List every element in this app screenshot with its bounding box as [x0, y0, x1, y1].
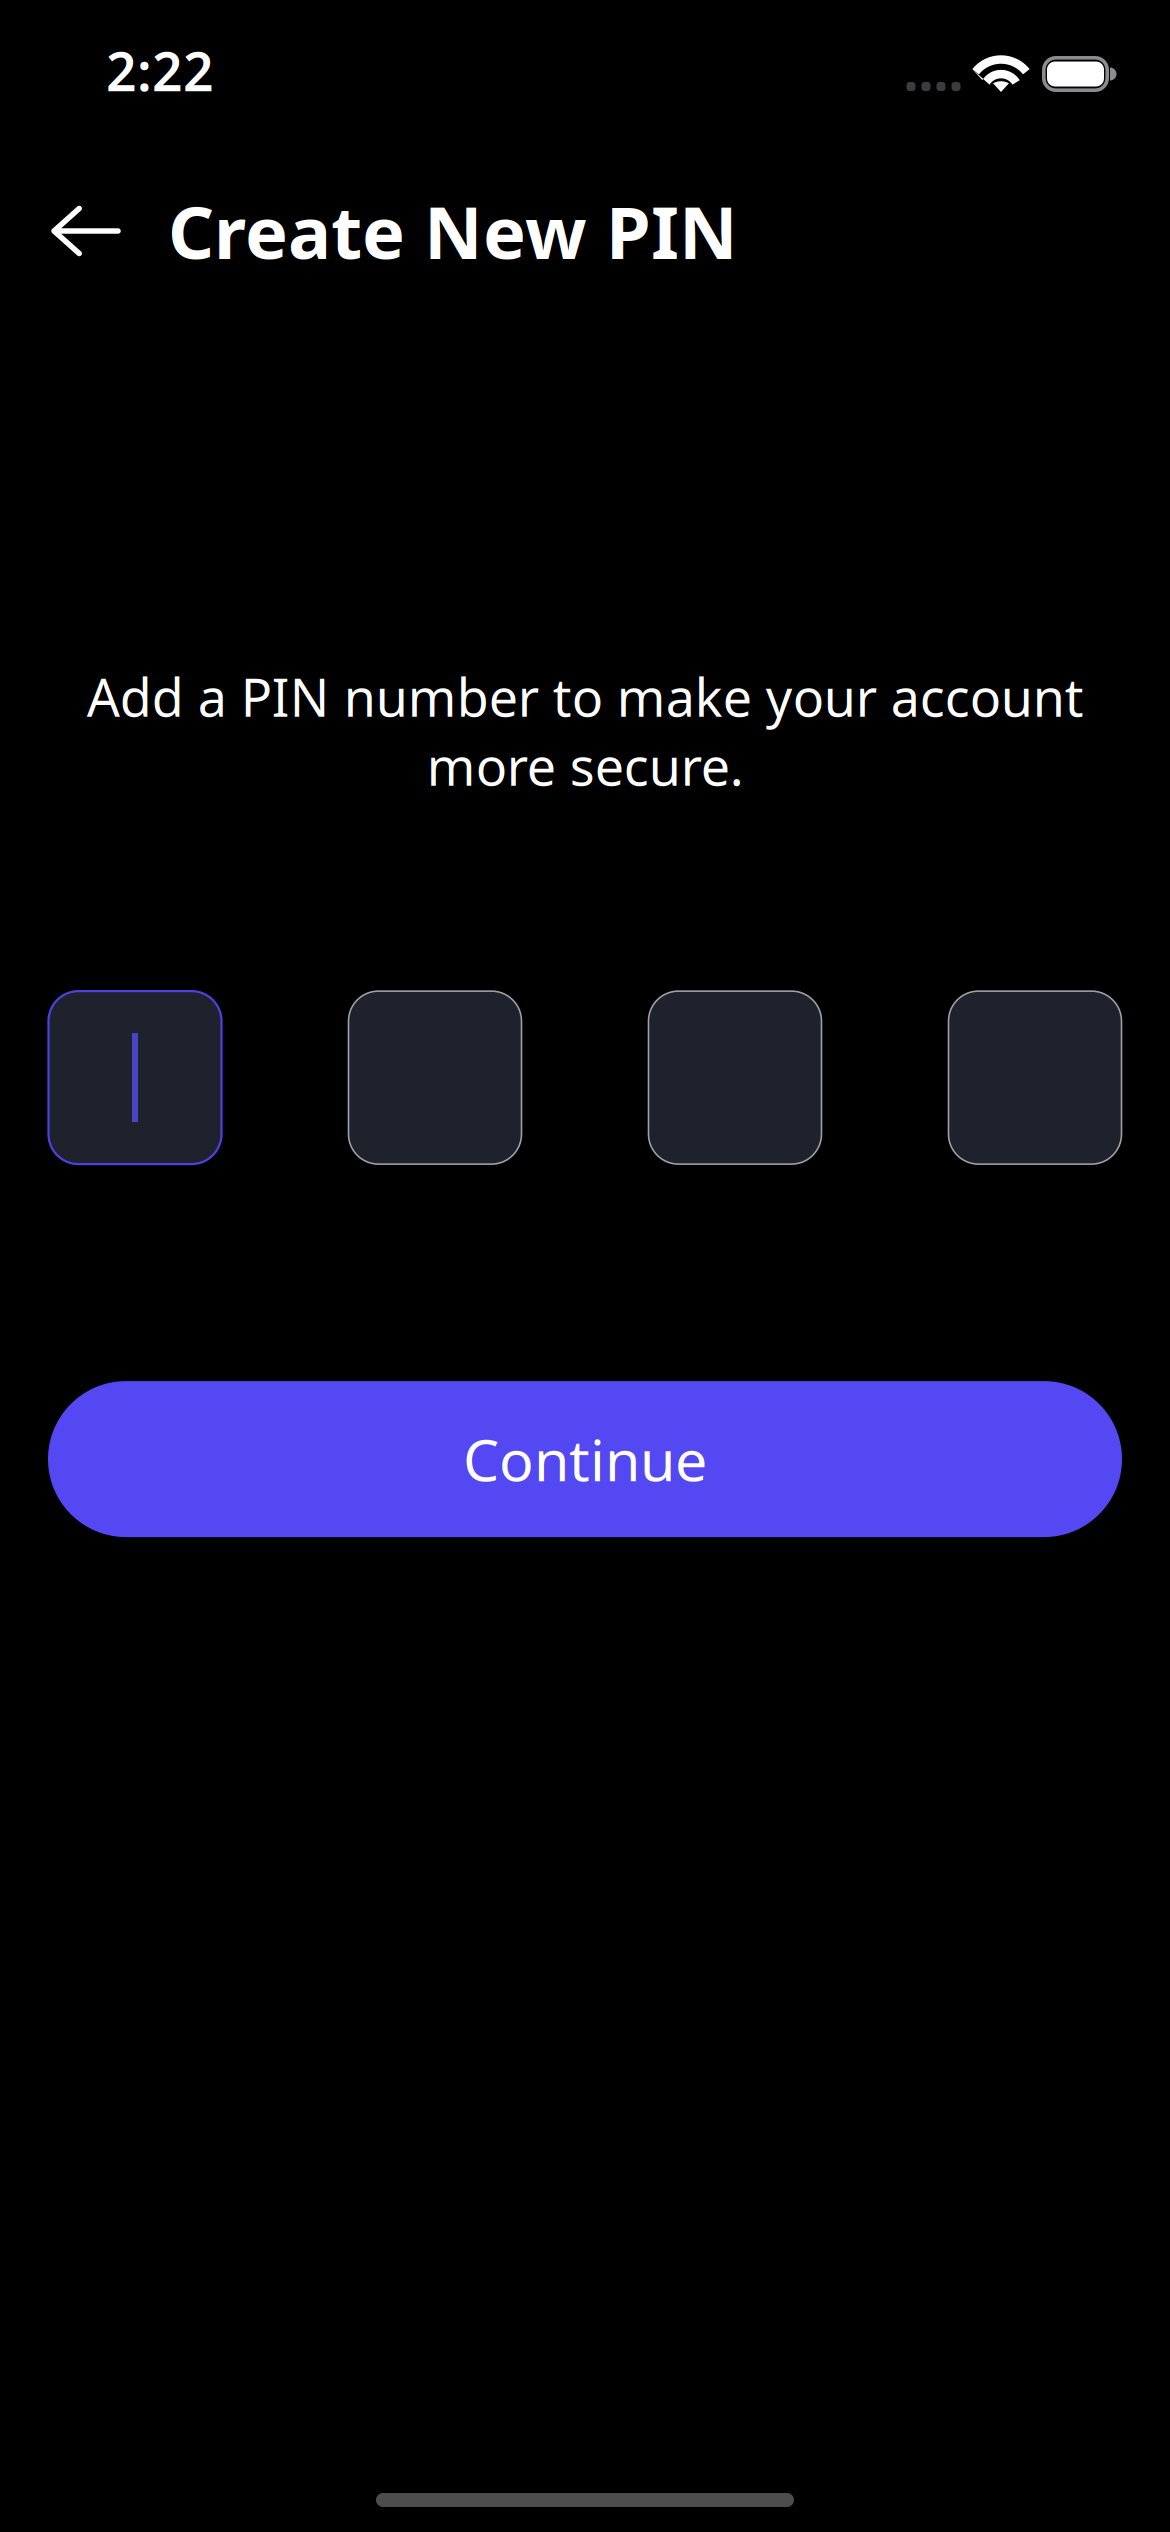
button[interactable]: Back	[4, 198, 168, 264]
button[interactable]: PIN digit 1	[48, 991, 221, 1164]
button[interactable]: PIN digit 2	[348, 991, 521, 1164]
staticText: Add a PIN number to make your account mo…	[86, 662, 1083, 800]
button[interactable]: PIN digit 4	[948, 991, 1121, 1164]
button[interactable]: PIN digit 3	[648, 991, 821, 1164]
button[interactable]: Continue	[48, 1381, 1122, 1537]
staticText: Continue	[463, 1421, 707, 1497]
staticText: 2:22	[106, 35, 214, 106]
staticText: Create New PIN	[168, 183, 738, 279]
